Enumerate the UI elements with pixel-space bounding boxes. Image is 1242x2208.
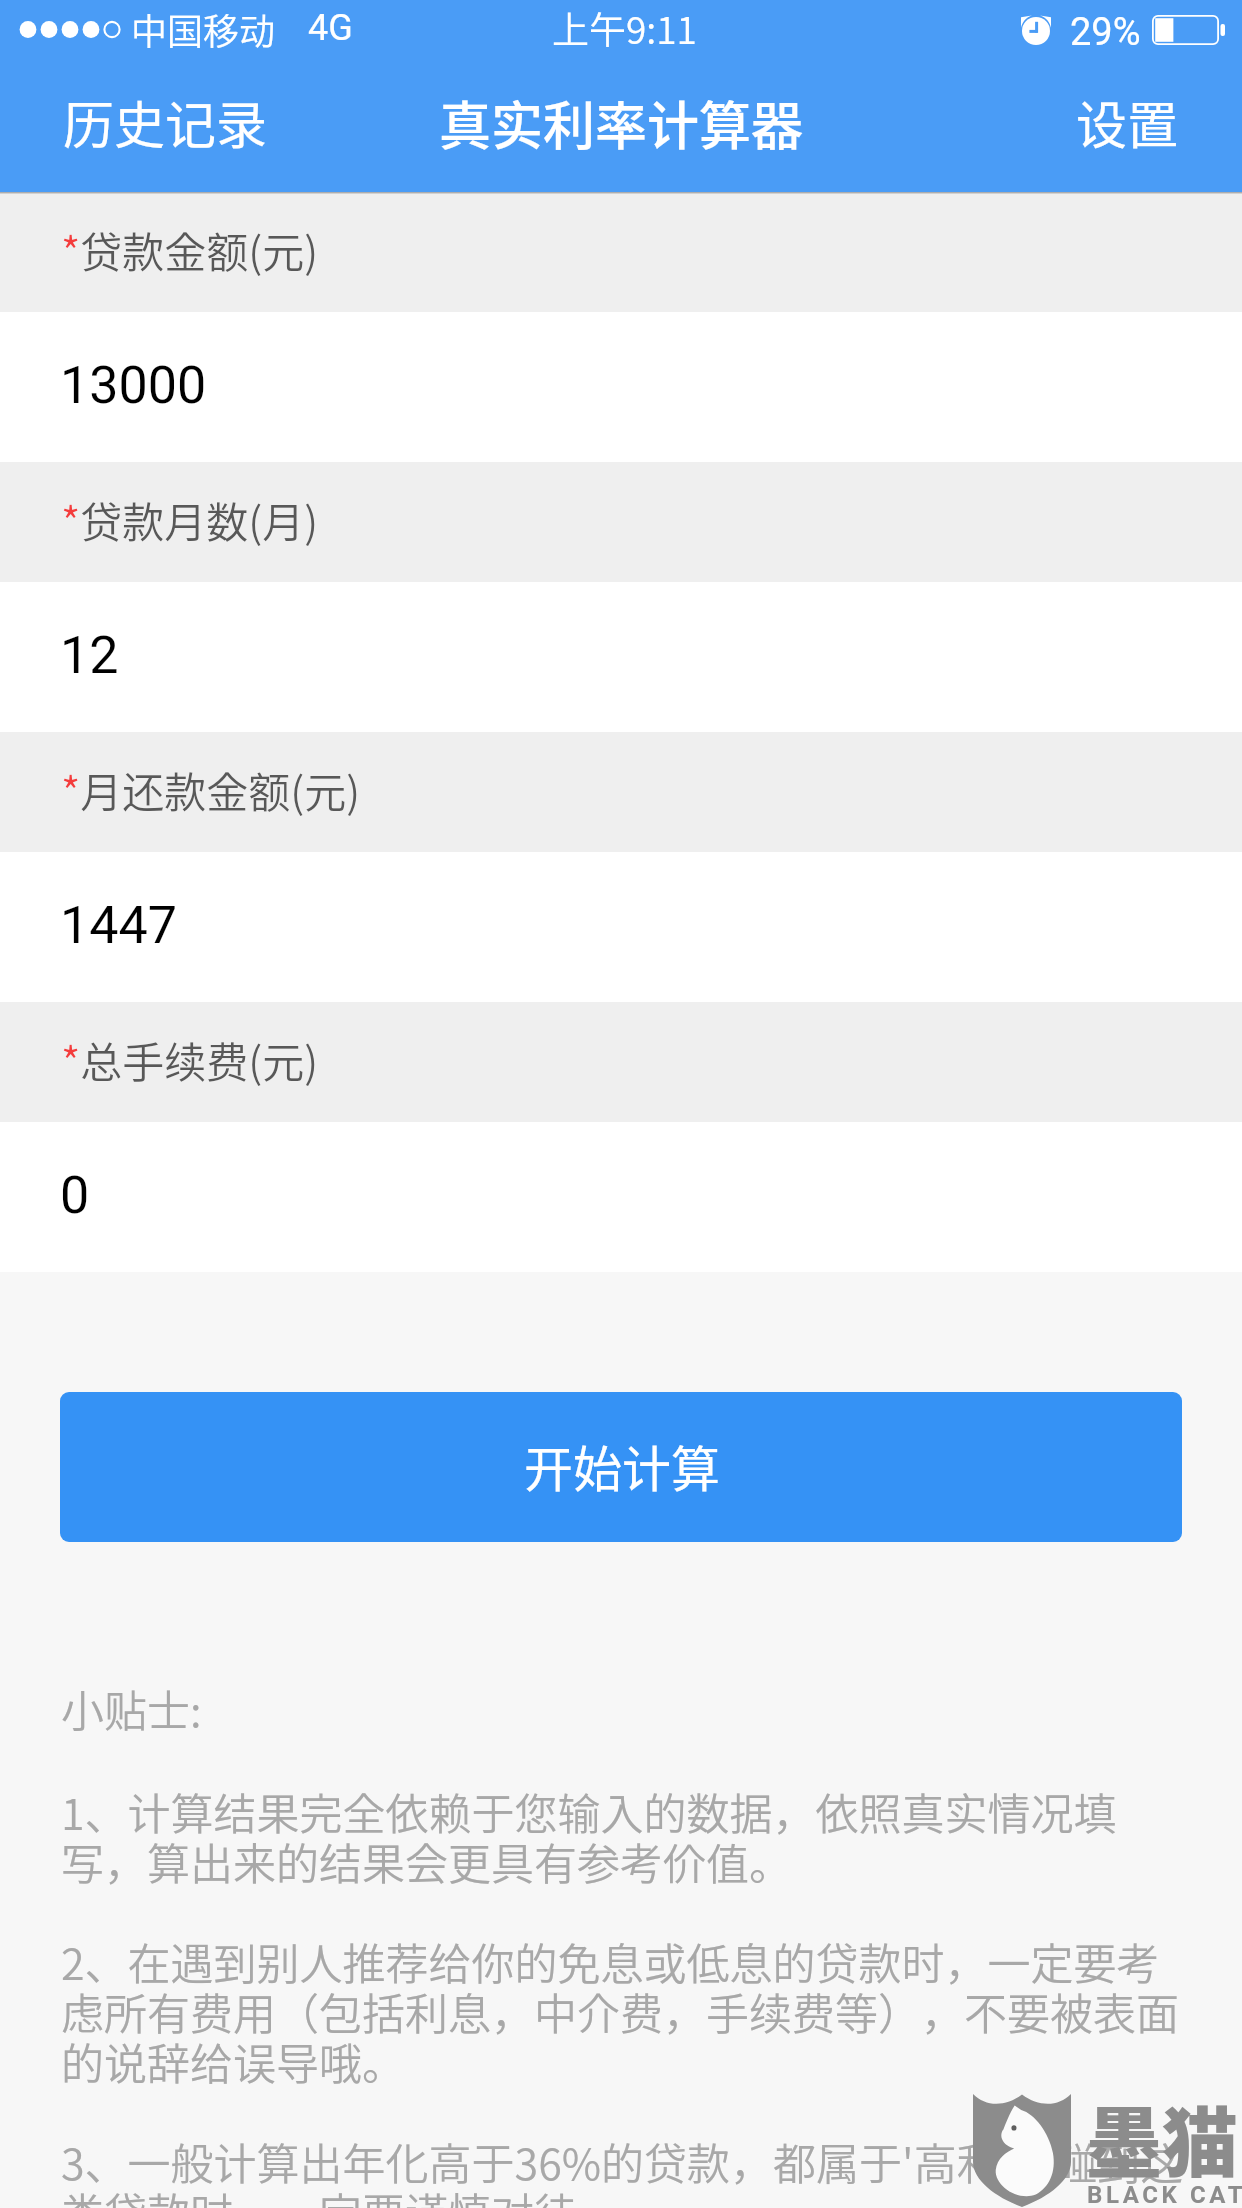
button[interactable]: 12 (0, 582, 1242, 732)
staticText: 3、一般计算出年化高于36%的贷款，都属于'高利贷'碰到这类贷款时，一定要谨慎对… (61, 2140, 1192, 2208)
staticText: *贷款月数(月) (61, 489, 319, 550)
staticText: 小贴士: (61, 1677, 202, 1739)
staticText: 13000 (60, 355, 207, 416)
staticText: *贷款金额(元) (61, 219, 319, 280)
staticText: 上午9:11 (552, 1, 697, 55)
staticText: 开始计算 (524, 1430, 721, 1501)
button[interactable]: 1447 (0, 852, 1242, 1002)
staticText: 历史记录 (63, 85, 268, 159)
staticText: 设置 (1076, 85, 1179, 159)
staticText: 1、计算结果完全依赖于您输入的数据，依照真实情况填写，算出来的结果会更具有参考价… (61, 1790, 1192, 1890)
staticText: 29% (1070, 10, 1141, 55)
staticText: 12 (60, 625, 119, 686)
staticText: 真实利率计算器 (439, 85, 804, 160)
staticText: 0 (60, 1165, 90, 1226)
staticText: 4G (308, 7, 353, 49)
staticText: 2、在遇到别人推荐给你的免息或低息的贷款时，一定要考虑所有费用（包括利息，中介费… (61, 1940, 1192, 2090)
button[interactable]: 13000 (0, 312, 1242, 462)
staticText: *总手续费(元) (61, 1029, 319, 1090)
other: Alarm (1018, 12, 1054, 48)
staticText: BLACK CAT (1087, 2181, 1242, 2208)
button[interactable]: 0 (0, 1122, 1242, 1272)
button[interactable]: 开始计算 (60, 1392, 1182, 1542)
staticText: *月还款金额(元) (61, 759, 361, 820)
staticText: 1447 (60, 895, 177, 956)
staticText: 中国移动 (131, 3, 276, 55)
button[interactable]: 历史记录 (0, 65, 302, 187)
button[interactable]: 设置 (1042, 65, 1242, 187)
staticText: 墨猫 (1086, 2083, 1238, 2193)
other: Battery 29 percent (1152, 15, 1226, 45)
